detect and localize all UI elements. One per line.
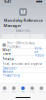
button[interactable]: Apps [18, 84, 28, 95]
staticText: Free • Offers In-App Purchases [7, 41, 35, 49]
staticText: Arcade [29, 91, 35, 93]
staticText: What’s New [2, 48, 10, 55]
staticText: Elsevier Inc. [15, 29, 30, 32]
button[interactable]: Privacy Policy [0, 73, 46, 78]
button[interactable]: Arcade [28, 84, 37, 95]
button[interactable]: Search [37, 84, 46, 95]
staticText: Apps [21, 91, 25, 93]
staticText: Mendeley Reference Manager [3, 17, 42, 28]
staticText: Developer Website [2, 67, 16, 74]
button[interactable]: Free • Offers In-App Purchases [0, 42, 46, 48]
staticText: Search [38, 91, 44, 93]
staticText: Version History [34, 47, 43, 57]
button[interactable]: Today [0, 84, 9, 95]
staticText: Games [11, 91, 16, 93]
staticText: Today [2, 91, 7, 93]
staticText: 9:41 [4, 0, 11, 4]
button[interactable]: What’s New [0, 48, 46, 55]
staticText: Preview [2, 57, 13, 61]
button[interactable]: Games [9, 84, 18, 95]
staticText: M [20, 8, 25, 15]
staticText: ●●● [36, 0, 42, 3]
button[interactable]: Developer Website [0, 68, 46, 73]
staticText: Privacy Policy [2, 74, 19, 77]
staticText: Read, annotate and organise [2, 62, 42, 66]
